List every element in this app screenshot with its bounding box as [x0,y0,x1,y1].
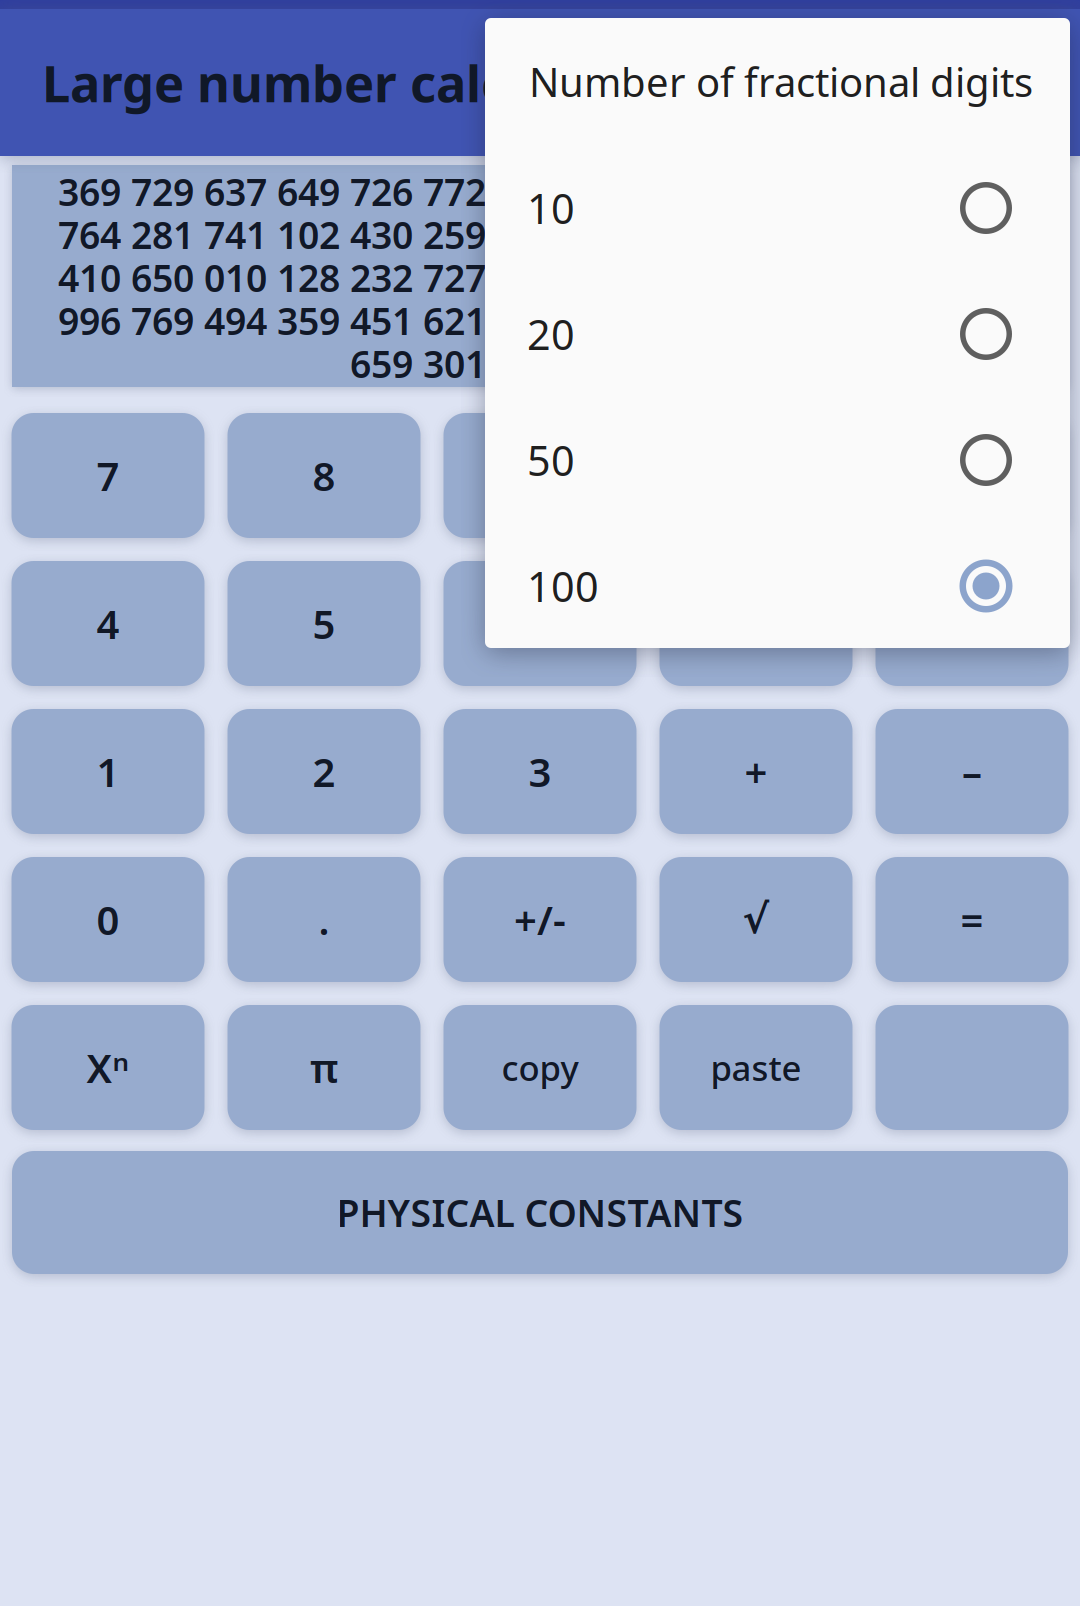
button[interactable]: PHYSICAL CONSTANTS [12,1151,1068,1274]
button[interactable]: Close bracket [875,561,1068,686]
button[interactable]: 5 [227,561,420,686]
button[interactable]: Divide [875,413,1068,538]
staticText: 659 301 [350,339,486,388]
button[interactable]: copy [443,1005,636,1130]
button[interactable]: 7 [11,413,204,538]
button[interactable]: Square root [659,857,852,982]
staticText: . [318,893,329,946]
staticText: Number of fractional digits [529,55,1033,108]
button[interactable]: 1 [11,709,204,834]
button[interactable]: Decimal point [227,857,420,982]
staticText: 2 [312,745,335,798]
staticText: 410 650 010 128 232 727 [58,253,486,302]
staticText: 7 [96,449,119,502]
button[interactable]: Equals [875,857,1068,982]
button[interactable]: 6 [443,561,636,686]
staticText: ( [749,597,762,650]
staticText: 764 281 741 102 430 259 [58,210,486,259]
staticText: PHYSICAL CONSTANTS [336,1188,743,1237]
button[interactable]: Sign [443,857,636,982]
staticText: + [744,745,767,798]
button[interactable]: 20 [485,271,1070,397]
staticText: paste [710,1044,801,1090]
staticText: 4 [96,597,119,650]
button[interactable]: 8 [227,413,420,538]
button[interactable]: Pi [227,1005,420,1130]
staticText: 50 [527,433,575,487]
button[interactable]: Open bracket [659,561,852,686]
button[interactable]: 3 [443,709,636,834]
button[interactable]: 2 [227,709,420,834]
staticText: / [964,449,980,502]
staticText: 8 [312,449,335,502]
staticText: – [962,745,982,798]
button[interactable]: Plus [659,709,852,834]
staticText: 5 [312,597,335,650]
staticText: +/- [514,893,566,946]
button[interactable]: 9 [443,413,636,538]
staticText: 10 [527,181,575,235]
staticText: 20 [527,307,575,361]
staticText: Large number calculator [42,49,662,116]
staticText: ) [965,597,978,650]
button[interactable]: Power [11,1005,204,1130]
staticText: = [960,893,983,946]
staticText: 0 [96,893,119,946]
button[interactable]: 0 [11,857,204,982]
staticText: 100 [527,559,599,613]
staticText: 996 769 494 359 451 621 [58,296,486,345]
staticText: 1 [96,745,119,798]
button[interactable]: 4 [11,561,204,686]
button[interactable]: 10 [485,145,1070,271]
button[interactable]: paste [659,1005,852,1130]
staticText: 369 729 637 649 726 772 [58,167,486,216]
button[interactable]: 50 [485,397,1070,523]
staticText: 9 [528,449,551,502]
button[interactable]: Blank [875,1005,1068,1130]
staticText: π [310,1041,338,1094]
staticText: 3 [528,745,551,798]
button[interactable]: Minus [875,709,1068,834]
staticText: copy [501,1044,578,1090]
staticText: 6 [528,597,551,650]
staticText: Xⁿ [86,1041,129,1094]
staticText: √ [742,897,769,942]
button[interactable]: 100 [485,523,1070,649]
